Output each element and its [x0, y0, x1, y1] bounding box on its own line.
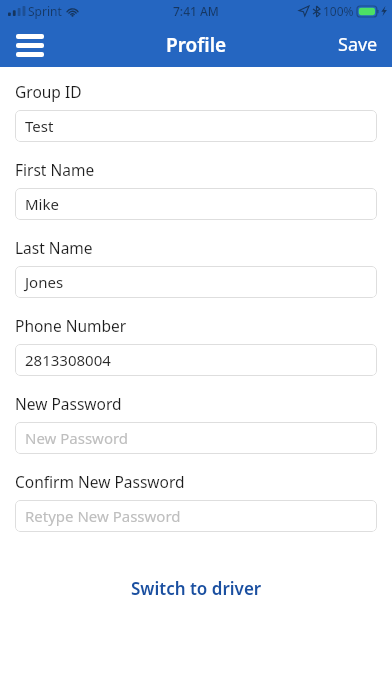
staticText: New Password	[25, 428, 129, 448]
staticText: Retype New Password	[25, 506, 181, 526]
staticText: First Name	[15, 159, 95, 180]
staticText: Phone Number	[15, 315, 127, 336]
staticText: Last Name	[15, 237, 93, 258]
button[interactable]: Save	[324, 22, 392, 67]
button[interactable]: Switch to driver	[0, 569, 392, 608]
button[interactable]: New Password	[15, 422, 377, 454]
staticText: Confirm New Password	[15, 471, 185, 492]
button[interactable]: Mike	[15, 188, 377, 220]
staticText: 2813308004	[25, 350, 111, 370]
staticText: Test	[25, 116, 54, 136]
button[interactable]: Retype New Password	[15, 500, 377, 532]
button[interactable]: Test	[15, 110, 377, 142]
staticText: New Password	[15, 393, 122, 414]
button[interactable]: 2813308004	[15, 344, 377, 376]
staticText: 100%	[323, 3, 354, 19]
staticText: Profile	[166, 32, 227, 58]
staticText: Group ID	[15, 81, 82, 102]
staticText: Switch to driver	[131, 577, 262, 600]
staticText: Save	[338, 32, 378, 57]
button[interactable]: Menu	[8, 23, 52, 67]
staticText: 7:41 AM	[173, 3, 219, 19]
staticText: Jones	[25, 272, 64, 292]
button[interactable]: Jones	[15, 266, 377, 298]
staticText: Sprint	[28, 3, 62, 19]
staticText: Mike	[25, 194, 59, 214]
